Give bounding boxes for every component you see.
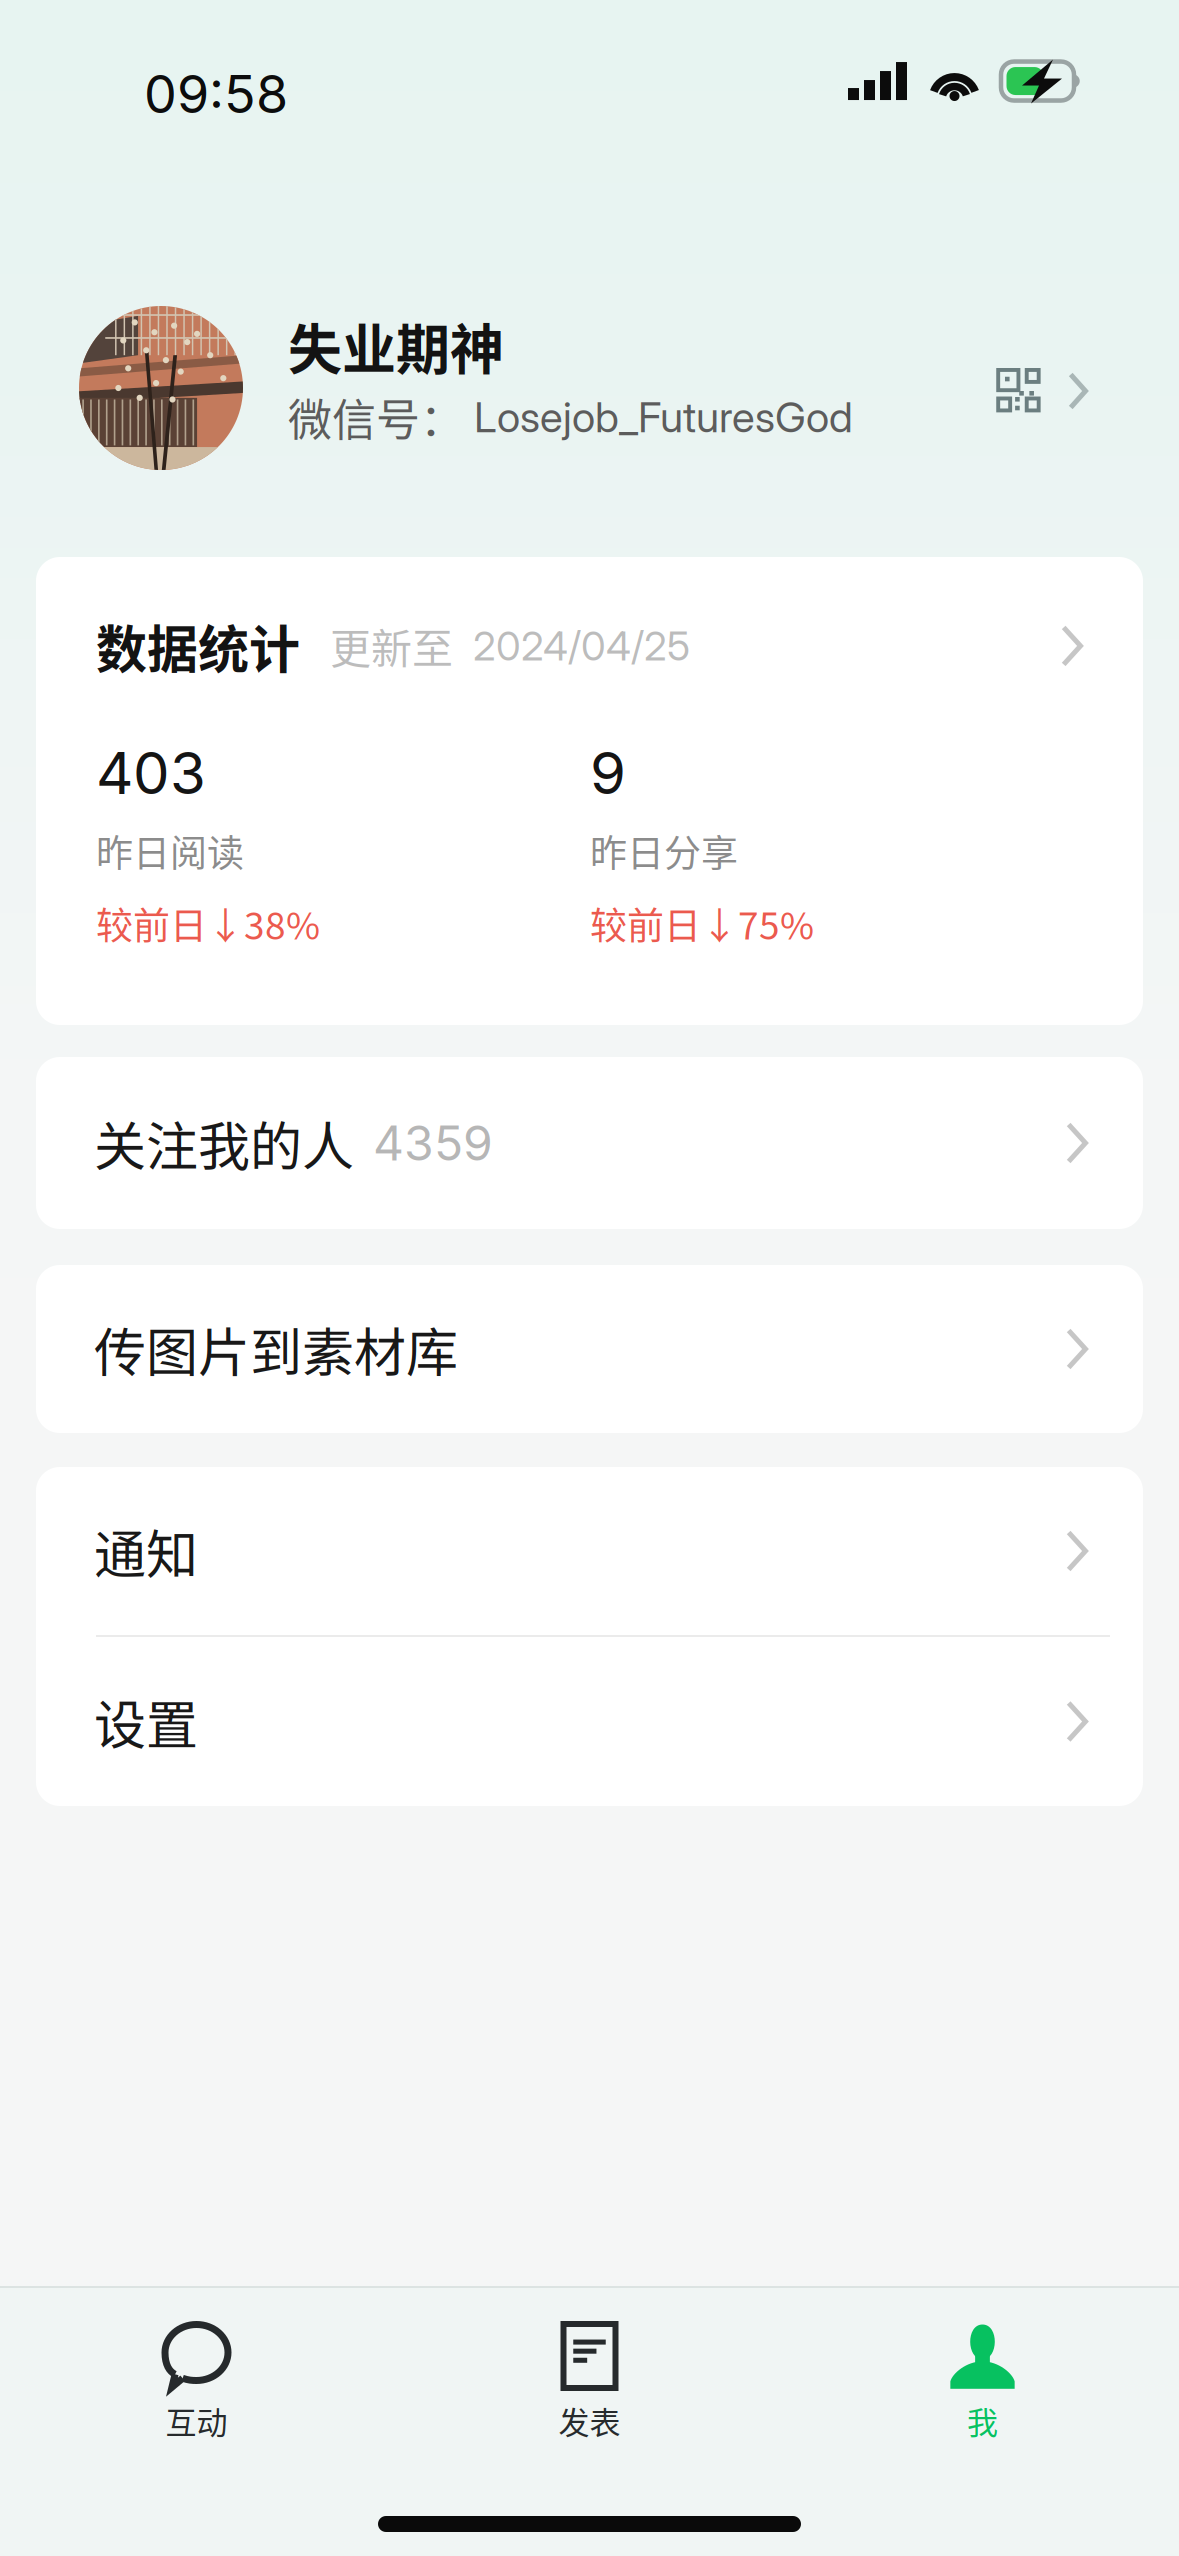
button[interactable]: 通知 (36, 1467, 1143, 1635)
button[interactable]: 失业期神 (0, 282, 1179, 472)
button[interactable]: 数据统计 (36, 557, 1143, 1025)
staticText: 09:58 (144, 62, 288, 125)
staticText: 较前日↓75% (590, 897, 814, 950)
staticText: 昨日分享 (590, 824, 738, 878)
button[interactable]: 关注我的人 (36, 1057, 1143, 1229)
staticText: 关注我的人 (94, 1105, 354, 1181)
staticText: 9 (590, 738, 626, 808)
staticText: 我 (967, 2398, 998, 2443)
staticText: 较前日↓38% (96, 897, 320, 950)
staticText: 互动 (165, 2398, 227, 2443)
button[interactable]: 互动 (0, 2323, 393, 2443)
staticText: 发表 (558, 2398, 620, 2443)
staticText: 昨日阅读 (96, 824, 244, 878)
staticText: Losejob_FuturesGod (474, 392, 853, 442)
staticText: 失业期神 (288, 307, 504, 385)
staticText: 更新至 (330, 616, 453, 676)
staticText: 403 (96, 738, 206, 808)
staticText: 通知 (94, 1513, 198, 1589)
staticText: 数据统计 (96, 609, 300, 683)
staticText: 2024/04/25 (473, 622, 690, 670)
staticText: 4359 (373, 1114, 493, 1172)
staticText: 微信号： (288, 385, 464, 449)
button[interactable]: 发表 (393, 2323, 786, 2443)
button[interactable]: 设置 (36, 1637, 1143, 1806)
button[interactable]: 我 (786, 2323, 1179, 2443)
staticText: 设置 (94, 1684, 198, 1759)
staticText: 传图片到素材库 (94, 1311, 458, 1387)
button[interactable]: 传图片到素材库 (36, 1265, 1143, 1433)
